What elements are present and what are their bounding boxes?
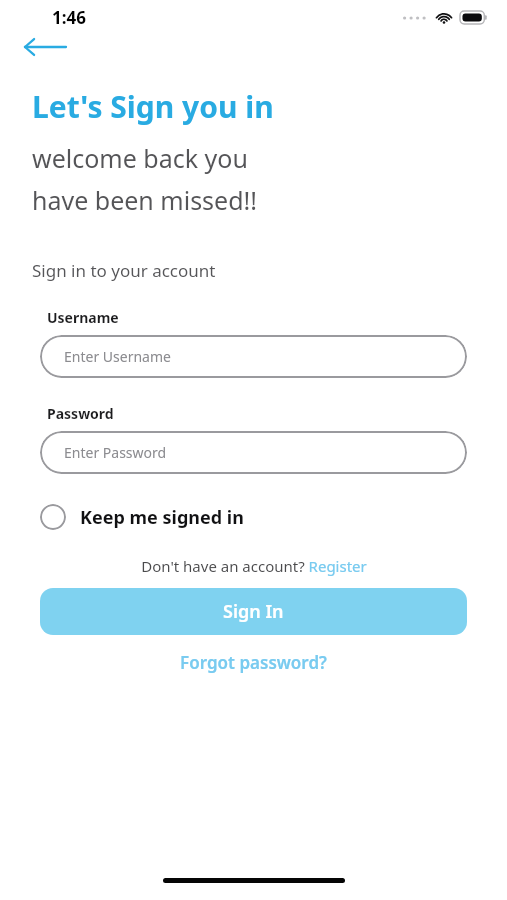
button[interactable]: Forgot password? (0, 647, 507, 677)
button[interactable]: Back (24, 34, 72, 60)
staticText: Username (47, 308, 119, 327)
button[interactable]: Keep me signed in (40, 500, 244, 534)
button[interactable]: Don't have an account? Register (0, 552, 507, 580)
staticText: Enter Username (64, 347, 171, 366)
staticText: Keep me signed in (80, 505, 244, 530)
staticText: Password (47, 404, 114, 423)
staticText: Don't have an account? Register (141, 556, 367, 576)
button[interactable]: Sign In (40, 588, 467, 635)
staticText: Forgot password? (180, 651, 327, 674)
staticText: Sign In (223, 599, 284, 624)
button[interactable]: Enter Username (40, 335, 467, 378)
staticText: welcome back you have been missed!! (32, 141, 258, 217)
staticText: Enter Password (64, 443, 167, 462)
staticText: Sign in to your account (32, 259, 216, 282)
button[interactable]: Enter Password (40, 431, 467, 474)
staticText: Let's Sign you in (32, 86, 274, 127)
staticText: 1:46 (52, 6, 86, 29)
